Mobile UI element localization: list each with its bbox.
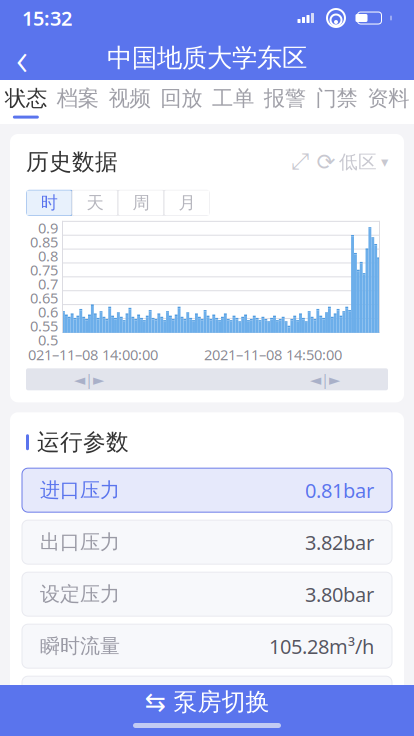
staticText: 资料 xyxy=(367,85,409,112)
staticText: 3.80bar xyxy=(305,581,374,607)
staticText: 021–11–08 14:00:00 xyxy=(28,345,158,364)
staticText: 低区 xyxy=(339,150,377,173)
staticText: 0.75 xyxy=(30,260,58,280)
staticText: 3.82bar xyxy=(305,529,374,555)
staticText: ◄|► xyxy=(74,370,104,389)
staticText: 出口压力 xyxy=(40,530,120,554)
staticText: 0.81bar xyxy=(305,477,374,503)
staticText: 视频 xyxy=(108,85,150,112)
staticText: 运行参数 xyxy=(37,428,129,456)
staticText: 时 xyxy=(40,192,57,213)
button[interactable]: 天 xyxy=(72,190,118,216)
staticText: 回放 xyxy=(160,85,202,112)
staticText: 进口压力 xyxy=(40,478,120,502)
button[interactable]: 视频 xyxy=(103,80,155,124)
staticText: 0.5 xyxy=(38,330,58,350)
button[interactable]: Back xyxy=(0,36,44,80)
staticText: 设定压力 xyxy=(40,582,120,606)
button[interactable]: 回放 xyxy=(155,80,207,124)
button[interactable]: 瞬时流量 xyxy=(22,624,392,668)
button[interactable]: 报警 xyxy=(259,80,311,124)
button[interactable]: 时 xyxy=(26,190,72,216)
staticText: 2495248.00m³ xyxy=(244,685,374,711)
staticText: 105.28m³/h xyxy=(269,633,374,659)
button[interactable]: 资料 xyxy=(362,80,414,124)
button[interactable]: 进口压力 xyxy=(22,468,392,512)
staticText: 工单 xyxy=(212,85,254,112)
staticText: ‹ xyxy=(16,28,28,88)
staticText: 月 xyxy=(178,192,195,213)
staticText: 报警 xyxy=(264,85,306,112)
staticText: ⟳ xyxy=(316,149,335,175)
staticText: 泵房切换 xyxy=(173,687,269,717)
button[interactable]: ⇆ xyxy=(0,685,414,736)
button[interactable]: 月 xyxy=(164,190,210,216)
button[interactable]: 设定压力 xyxy=(22,572,392,616)
staticText: 0.7 xyxy=(38,274,58,294)
staticText: 15:32 xyxy=(22,5,72,31)
staticText: 门禁 xyxy=(315,85,357,112)
button[interactable]: 门禁 xyxy=(310,80,362,124)
button[interactable]: 低区 xyxy=(339,149,388,175)
staticText: ⇆ xyxy=(144,688,165,716)
staticText: 0.6 xyxy=(38,302,58,322)
staticText: 0.65 xyxy=(30,288,58,308)
button[interactable]: Refresh xyxy=(313,149,339,175)
staticText: 0.55 xyxy=(30,316,58,336)
staticText: 周 xyxy=(132,192,149,213)
button[interactable]: 工单 xyxy=(207,80,259,124)
staticText: 0.85 xyxy=(30,232,58,252)
button[interactable]: 状态 xyxy=(0,80,52,124)
button[interactable]: Fullscreen xyxy=(287,149,313,175)
staticText: 2021–11–08 14:50:00 xyxy=(204,345,342,364)
button[interactable]: 累计流量 xyxy=(22,676,392,720)
staticText: 0.8 xyxy=(38,246,58,266)
staticText: ◄|► xyxy=(310,370,340,389)
staticText: 瞬时流量 xyxy=(40,634,120,658)
button[interactable]: 档案 xyxy=(52,80,104,124)
staticText: ⤢ xyxy=(291,151,309,173)
button[interactable]: 周 xyxy=(118,190,164,216)
staticText: 中国地质大学东区 xyxy=(107,42,307,73)
staticText: ▾ xyxy=(381,154,388,170)
staticText: 状态 xyxy=(5,85,47,112)
staticText: 天 xyxy=(86,192,103,213)
staticText: 历史数据 xyxy=(26,148,118,176)
button[interactable]: 出口压力 xyxy=(22,520,392,564)
staticText: 档案 xyxy=(57,85,99,112)
staticText: 0.9 xyxy=(38,218,58,238)
